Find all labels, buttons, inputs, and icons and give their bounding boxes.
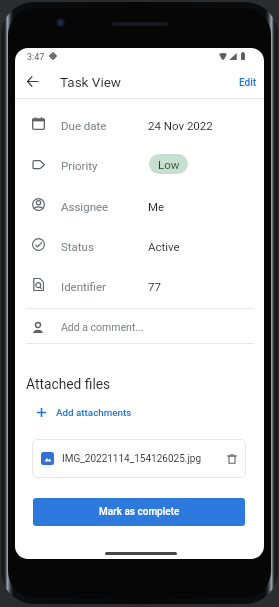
- button[interactable]: Add a comment...: [15, 309, 264, 344]
- button[interactable]: Add attachments: [37, 401, 132, 423]
- button[interactable]: Delete: [224, 451, 240, 467]
- staticText: Mark as complete: [99, 506, 180, 518]
- staticText: 3:47: [27, 52, 45, 63]
- button[interactable]: Assignee: [15, 185, 264, 225]
- button[interactable]: Mark as complete: [33, 498, 245, 526]
- staticText: 24 Nov 2022: [148, 119, 213, 132]
- staticText: IMG_20221114_154126025.jpg: [62, 453, 202, 465]
- staticText: Priority: [61, 159, 98, 172]
- staticText: Identifier: [61, 280, 106, 293]
- staticText: Edit: [239, 77, 257, 89]
- staticText: Active: [148, 240, 180, 253]
- staticText: Add attachments: [56, 407, 132, 418]
- button[interactable]: Status: [15, 225, 264, 265]
- button[interactable]: Identifier: [15, 265, 264, 305]
- staticText: 77: [148, 280, 161, 293]
- button[interactable]: Back: [21, 70, 43, 92]
- staticText: Due date: [61, 119, 107, 132]
- staticText: Task View: [60, 74, 121, 90]
- button[interactable]: Priority: [15, 144, 264, 184]
- button[interactable]: Edit: [237, 72, 258, 94]
- staticText: Me: [148, 200, 165, 213]
- staticText: Attached files: [26, 376, 111, 392]
- button[interactable]: IMG_20221114_154126025.jpg: [32, 439, 246, 478]
- staticText: Assignee: [61, 200, 109, 213]
- button[interactable]: Due date: [15, 104, 264, 144]
- staticText: Add a comment...: [61, 321, 144, 333]
- staticText: Status: [61, 240, 94, 253]
- staticText: Low: [158, 158, 180, 171]
